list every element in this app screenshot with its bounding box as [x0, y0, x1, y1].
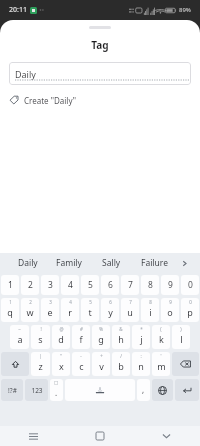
staticText: #	[80, 326, 83, 332]
button[interactable]: "	[52, 352, 70, 376]
staticText: -	[80, 353, 82, 359]
button[interactable]: +	[92, 352, 110, 376]
staticText: %	[99, 326, 103, 332]
staticText: 5	[88, 279, 93, 291]
button[interactable]: Recents	[0, 426, 66, 446]
staticText: Failure	[141, 257, 168, 269]
button[interactable]: Family	[47, 253, 90, 273]
staticText: n	[138, 360, 144, 372]
button[interactable]: 0	[181, 298, 199, 322]
staticText: /	[120, 353, 122, 359]
button[interactable]: Tag	[9, 92, 191, 108]
button[interactable]: 7	[121, 275, 139, 295]
staticText: ,	[142, 384, 145, 395]
staticText: d	[58, 333, 64, 345]
staticText: Create "Daily"	[24, 95, 77, 106]
staticText: )	[180, 326, 182, 332]
button[interactable]: 6	[101, 298, 119, 322]
staticText: 7	[129, 299, 132, 305]
staticText: 9	[168, 279, 173, 291]
button[interactable]: 2	[21, 298, 39, 322]
staticText: l	[180, 333, 183, 345]
button[interactable]: &	[112, 325, 130, 349]
button[interactable]: /	[112, 352, 130, 376]
button[interactable]: 3	[41, 298, 59, 322]
button[interactable]: 9	[161, 298, 179, 322]
button[interactable]: 5	[81, 298, 99, 322]
button[interactable]: 1	[1, 298, 19, 322]
staticText: 8	[149, 299, 152, 305]
staticText: c	[79, 360, 84, 372]
staticText: 0	[189, 299, 192, 305]
staticText: k	[159, 333, 164, 345]
button[interactable]: !?#	[1, 379, 23, 401]
staticText: !?#	[8, 386, 17, 395]
staticText: Family	[56, 257, 82, 269]
staticText: x	[59, 360, 64, 372]
button[interactable]: 6	[101, 275, 119, 295]
staticText: g	[98, 333, 104, 345]
button[interactable]: *	[132, 325, 150, 349]
staticText: h	[118, 333, 124, 345]
staticText: Daily	[15, 68, 36, 80]
staticText: p	[187, 306, 193, 318]
button[interactable]: More suggestions	[176, 253, 192, 273]
button[interactable]: Daily	[8, 253, 47, 273]
button[interactable]: -	[72, 352, 90, 376]
staticText: 3	[49, 299, 52, 305]
button[interactable]: 8	[141, 275, 159, 295]
button[interactable]: 8	[141, 298, 159, 322]
button[interactable]: 1	[1, 275, 19, 295]
button[interactable]: '	[152, 352, 170, 376]
button[interactable]: ,	[137, 379, 150, 401]
staticText: Daily	[18, 257, 38, 269]
button[interactable]: 5	[81, 275, 99, 295]
staticText: &	[119, 326, 123, 332]
button[interactable]: #	[72, 325, 90, 349]
button[interactable]: 3	[41, 275, 59, 295]
button[interactable]: @	[52, 325, 70, 349]
staticText: 20:11	[9, 5, 27, 15]
staticText: 5	[89, 299, 92, 305]
button[interactable]: Backspace	[172, 352, 199, 376]
staticText: o	[167, 306, 173, 318]
button[interactable]: Sally	[90, 253, 133, 273]
button[interactable]: Enter	[175, 379, 199, 401]
button[interactable]: 7	[121, 298, 139, 322]
button[interactable]: Change keyboard language	[152, 379, 173, 401]
button[interactable]: !	[31, 325, 50, 349]
button[interactable]: %	[92, 325, 110, 349]
button[interactable]: |	[31, 352, 50, 376]
staticText: f	[79, 333, 83, 345]
staticText: "	[60, 353, 62, 359]
staticText: 1	[8, 279, 13, 291]
staticText: s	[38, 333, 43, 345]
button[interactable]: Failure	[133, 253, 176, 273]
button[interactable]: Hide keyboard	[133, 426, 200, 446]
button[interactable]: Space	[65, 379, 135, 401]
button[interactable]: (	[152, 325, 170, 349]
staticText: 9	[169, 299, 172, 305]
staticText: 89%	[179, 6, 191, 14]
staticText: ~	[18, 326, 21, 332]
staticText: y	[108, 306, 113, 318]
button[interactable]: )	[172, 325, 190, 349]
staticText: e	[47, 306, 53, 318]
button[interactable]: ~	[10, 325, 29, 349]
staticText: +	[100, 353, 103, 359]
button[interactable]: :	[132, 352, 150, 376]
staticText: □	[54, 380, 59, 385]
button[interactable]: 9	[161, 275, 179, 295]
button[interactable]: 0	[181, 275, 199, 295]
button[interactable]: Shift	[1, 352, 29, 376]
button[interactable]: 2	[21, 275, 39, 295]
staticText: 4	[69, 299, 72, 305]
button[interactable]: Home	[66, 426, 133, 446]
button[interactable]: 123	[25, 379, 48, 401]
button[interactable]: 4	[61, 298, 79, 322]
button[interactable]: 4	[61, 275, 79, 295]
button[interactable]: Daily	[9, 62, 191, 85]
button[interactable]: □	[50, 379, 63, 401]
staticText: |	[39, 353, 42, 359]
staticText: t	[88, 306, 92, 318]
